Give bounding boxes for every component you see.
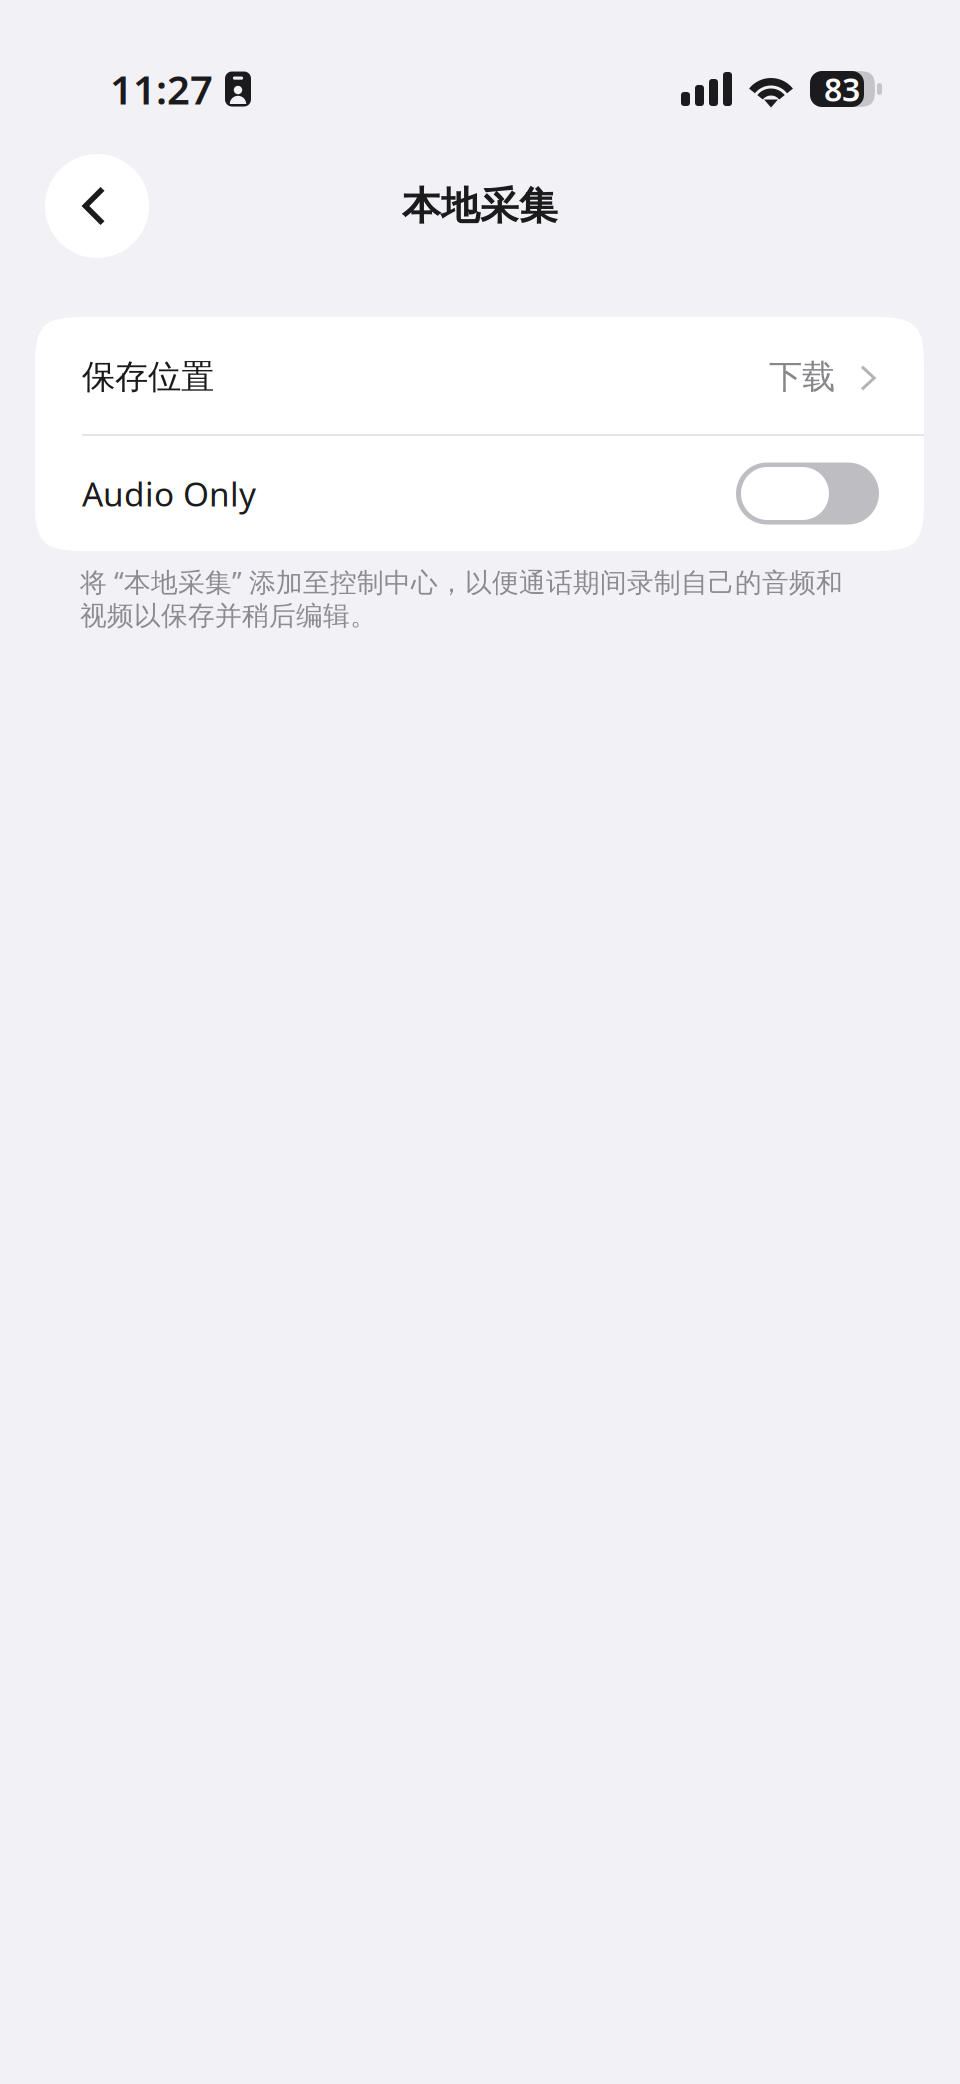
staticText: 保存位置	[82, 356, 214, 397]
staticText: 将 “本地采集” 添加至控制中心，以便通话期间录制自己的音频和视频以保存并稍后编…	[80, 564, 843, 632]
button[interactable]: 保存位置	[35, 317, 924, 434]
staticText: 下载	[769, 356, 835, 397]
staticText: 本地采集	[402, 182, 558, 230]
button[interactable]: Audio Only	[35, 436, 924, 551]
staticText: Audio Only	[82, 471, 256, 516]
button[interactable]: Back	[45, 154, 149, 258]
staticText: 83	[824, 68, 860, 110]
staticText: 11:27	[110, 62, 213, 115]
